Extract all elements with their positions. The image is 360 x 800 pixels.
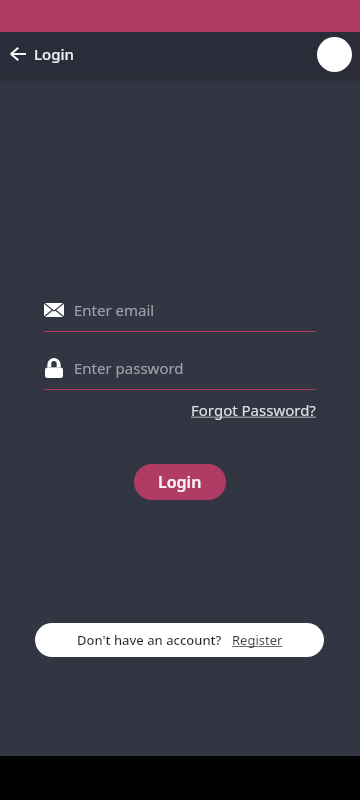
staticText: Login xyxy=(158,471,202,493)
button[interactable]: Don't have an account? xyxy=(35,623,324,657)
staticText: Register xyxy=(232,631,283,649)
button[interactable]: Login xyxy=(134,464,226,500)
staticText: Enter password xyxy=(74,358,184,378)
button[interactable]: Forgot Password? xyxy=(191,400,316,420)
staticText: Don't have an account? xyxy=(77,631,222,649)
staticText: Login xyxy=(34,44,74,64)
staticText: Forgot Password? xyxy=(191,400,316,420)
staticText: Enter email xyxy=(74,300,155,320)
button[interactable]: Profile xyxy=(317,37,352,72)
button[interactable]: Back xyxy=(0,32,36,76)
